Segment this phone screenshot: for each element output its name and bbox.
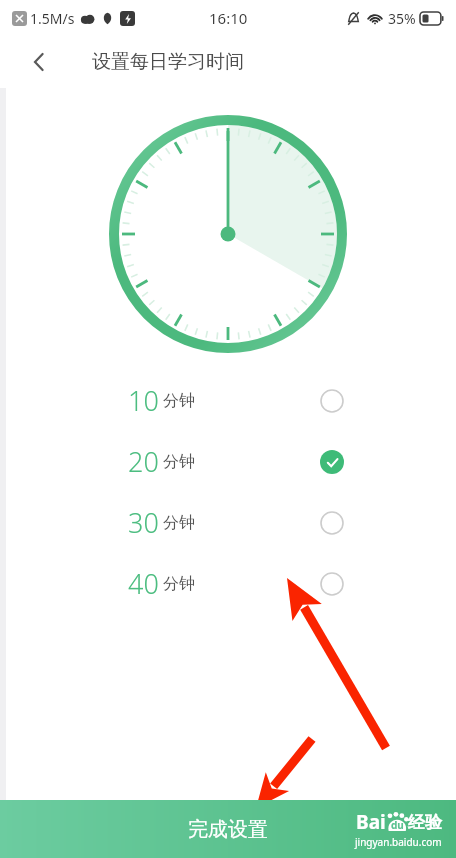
staticText: 40 — [128, 565, 159, 602]
staticText: du — [391, 818, 404, 832]
staticText: 16:10 — [209, 8, 248, 28]
button[interactable]: 20 — [0, 431, 456, 492]
staticText: 经验 — [408, 812, 442, 833]
staticText: 分钟 — [163, 452, 195, 472]
staticText: Bai — [356, 809, 386, 835]
staticText: 20 — [128, 443, 159, 480]
button[interactable]: 40 — [0, 553, 456, 614]
button[interactable]: 10 — [0, 370, 456, 431]
button[interactable]: 完成设置 — [0, 800, 456, 858]
button[interactable]: Back — [18, 41, 60, 83]
staticText: 35% — [388, 9, 416, 28]
staticText: 30 — [128, 504, 159, 541]
staticText: 1.5M/s — [30, 9, 75, 28]
staticText: 分钟 — [163, 574, 195, 594]
staticText: 设置每日学习时间 — [92, 50, 244, 74]
staticText: 完成设置 — [188, 817, 268, 842]
staticText: jingyan.baidu.com — [355, 835, 442, 849]
button[interactable]: 30 — [0, 492, 456, 553]
staticText: 10 — [128, 382, 159, 419]
staticText: 分钟 — [163, 391, 195, 411]
staticText: 分钟 — [163, 513, 195, 533]
